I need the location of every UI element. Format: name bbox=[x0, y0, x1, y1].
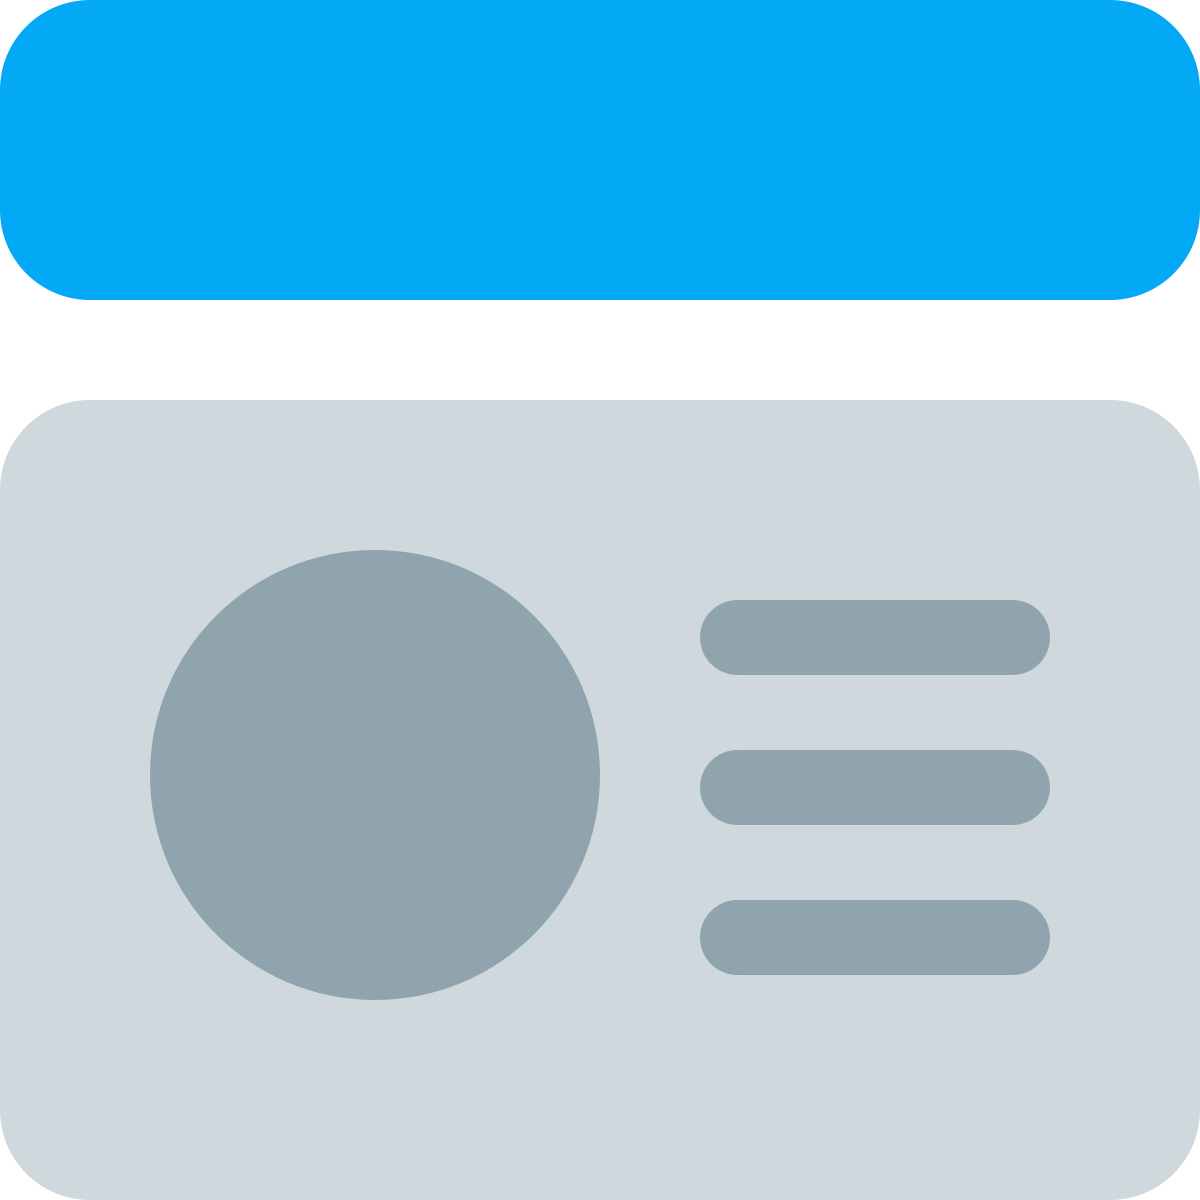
button[interactable]: Contact card bbox=[0, 400, 1200, 1200]
button[interactable]: Header banner bbox=[0, 0, 1200, 300]
